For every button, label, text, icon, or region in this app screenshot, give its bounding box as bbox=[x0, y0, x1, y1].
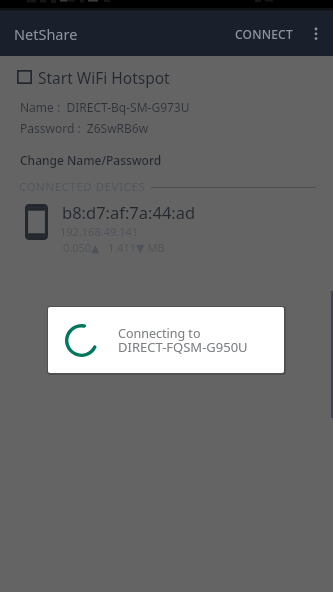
button[interactable]: More options bbox=[299, 18, 332, 51]
staticText: Start WiFi Hotspot bbox=[38, 67, 170, 88]
staticText: Change Name/Password bbox=[20, 152, 162, 168]
button[interactable]: CONNECT bbox=[229, 14, 299, 54]
staticText: b8:d7:af:7a:44:ad bbox=[62, 201, 196, 223]
staticText: Password : Z6SwRB6w bbox=[20, 120, 149, 136]
staticText: NetShare bbox=[14, 24, 78, 44]
button[interactable]: b8:d7:af:7a:44:ad bbox=[0, 204, 333, 258]
staticText: Connecting to bbox=[118, 325, 201, 342]
staticText: 0.050▲ bbox=[63, 240, 100, 255]
staticText: DIRECT-FQSM-G950U bbox=[118, 338, 248, 356]
staticText: CONNECTED DEVICES bbox=[19, 179, 146, 195]
staticText: Name : DIRECT-Bq-SM-G973U bbox=[20, 99, 190, 115]
staticText: CONNECT bbox=[235, 26, 293, 42]
staticText: 1.411▼ MB bbox=[108, 240, 165, 255]
button[interactable]: Start WiFi Hotspot bbox=[0, 66, 333, 89]
button[interactable]: Change Name/Password bbox=[0, 152, 162, 168]
staticText: 192.168.49.141 bbox=[60, 224, 139, 239]
